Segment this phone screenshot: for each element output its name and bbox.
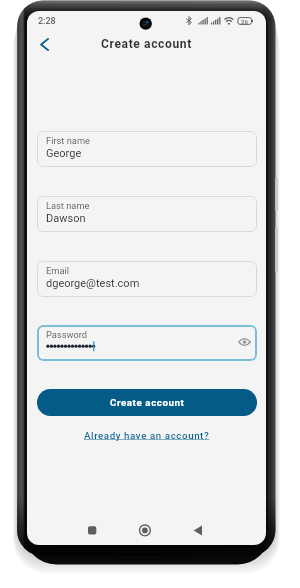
button[interactable]: Show password <box>236 334 252 350</box>
button[interactable]: Already have an account? <box>84 430 210 441</box>
staticText: Dawson <box>46 212 86 225</box>
button[interactable]: Last name <box>37 196 257 232</box>
staticText: Create account <box>101 37 192 51</box>
staticText: 2:28 <box>38 16 56 27</box>
staticText: Email <box>46 265 70 276</box>
button[interactable]: Password <box>37 325 257 361</box>
staticText: George <box>46 147 82 160</box>
staticText: dgeorge@test.com <box>46 277 140 290</box>
button[interactable]: Back <box>35 33 53 55</box>
staticText: 26 <box>241 18 249 25</box>
staticText: Last name <box>46 200 90 211</box>
staticText: Create account <box>110 397 185 408</box>
staticText: Already have an account? <box>84 430 210 441</box>
button[interactable]: Create account <box>37 389 257 416</box>
staticText: Password <box>46 329 88 340</box>
staticText: First name <box>46 135 90 146</box>
button[interactable]: Email <box>37 261 257 297</box>
button[interactable]: First name <box>37 131 257 167</box>
